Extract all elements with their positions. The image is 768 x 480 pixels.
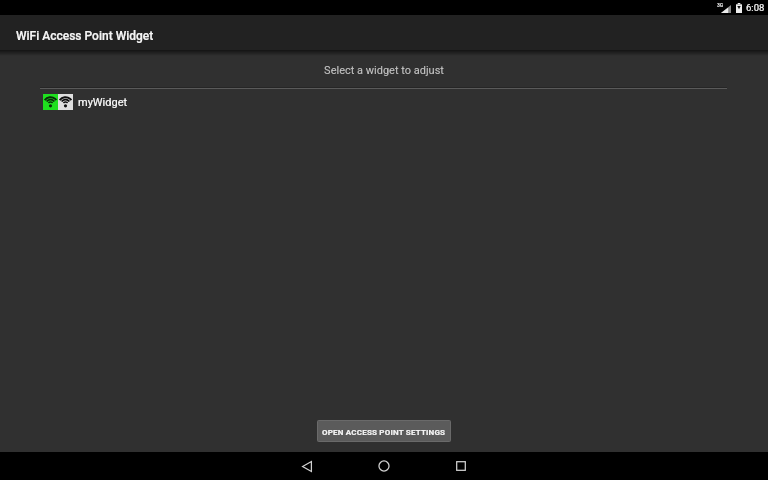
staticText: 3G xyxy=(717,2,724,8)
button[interactable]: myWidget xyxy=(0,89,768,115)
staticText: myWidget xyxy=(78,96,128,109)
staticText: WiFi Access Point Widget xyxy=(16,29,154,43)
staticText: Select a widget to adjust xyxy=(0,64,768,77)
staticText: OPEN ACCESS POINT SETTINGS xyxy=(322,428,446,437)
button[interactable]: Back xyxy=(284,452,330,480)
button[interactable]: Recent apps xyxy=(438,452,484,480)
button[interactable]: Home xyxy=(361,452,407,480)
button[interactable]: OPEN ACCESS POINT SETTINGS xyxy=(317,420,451,442)
staticText: 6:08 xyxy=(746,2,765,13)
